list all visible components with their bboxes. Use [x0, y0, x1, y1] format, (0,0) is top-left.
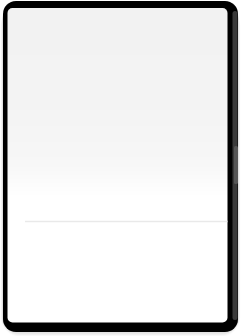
button[interactable]: [8, 8, 228, 322]
button[interactable]: Power button: [231, 143, 241, 187]
